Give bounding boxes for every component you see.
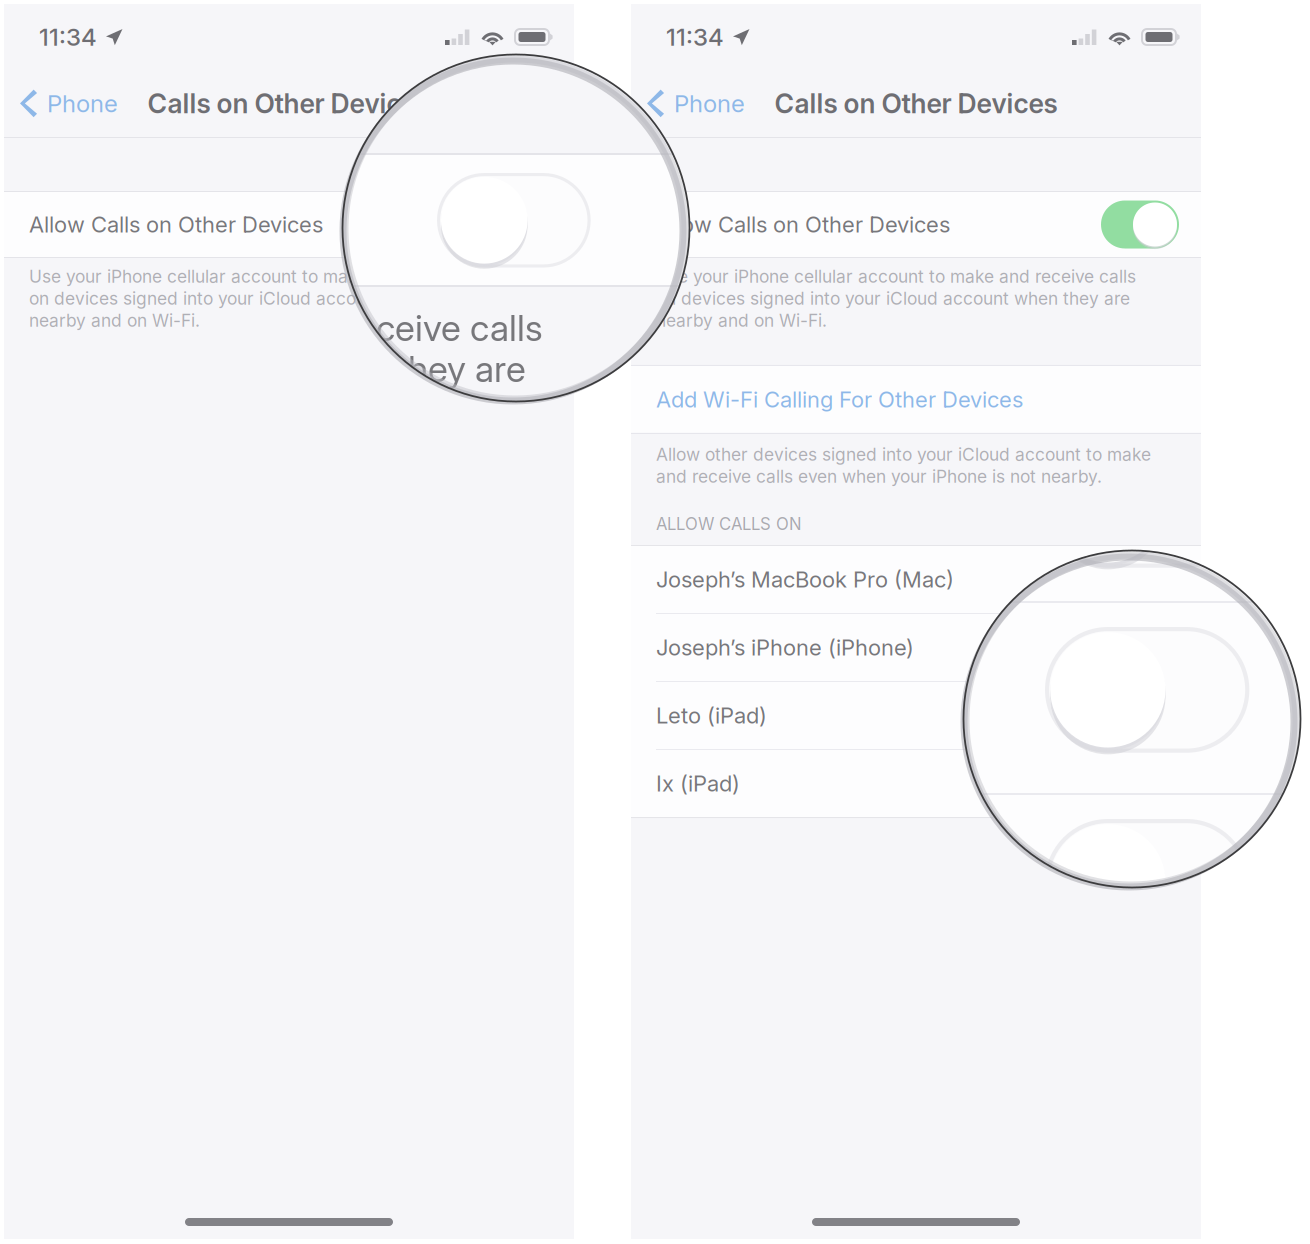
staticText: Phone bbox=[47, 89, 118, 118]
button[interactable]: Add Wi-Fi Calling For Other Devices bbox=[631, 366, 1201, 433]
staticText: Calls on Other Devices bbox=[147, 87, 430, 120]
staticText: Calls on Other Devices bbox=[774, 87, 1057, 120]
button[interactable]: Joseph’s iPhone (iPhone) bbox=[631, 614, 1201, 681]
button[interactable]: Leto (iPad) bbox=[631, 682, 1201, 749]
staticText: Leto (iPad) bbox=[656, 702, 767, 729]
staticText: ALLOW CALLS ON bbox=[656, 514, 802, 534]
staticText: and receive calls even when your iPhone … bbox=[656, 466, 1102, 487]
staticText: ceive calls bbox=[376, 306, 543, 350]
button[interactable]: Joseph’s MacBook Pro (Mac) bbox=[631, 546, 1201, 613]
staticText: Add Wi-Fi Calling For Other Devices bbox=[656, 386, 1023, 413]
staticText: Allow Calls on Other Devices bbox=[656, 211, 950, 238]
staticText: nearby and on Wi-Fi. bbox=[29, 310, 200, 331]
button[interactable]: Allow Calls on Other Devices bbox=[4, 192, 574, 257]
button[interactable]: Phone bbox=[4, 78, 130, 129]
staticText: Joseph’s MacBook Pro (Mac) bbox=[656, 566, 954, 593]
staticText: 11:34 bbox=[666, 22, 724, 51]
staticText: Joseph’s iPhone (iPhone) bbox=[656, 634, 914, 661]
staticText: on devices signed into your iCloud accou… bbox=[29, 288, 503, 309]
staticText: Allow other devices signed into your iCl… bbox=[656, 444, 1151, 465]
staticText: 11:34 bbox=[39, 22, 97, 51]
staticText: Phone bbox=[674, 89, 745, 118]
button[interactable]: Allow Calls on Other Devices bbox=[631, 192, 1201, 257]
staticText: nearby and on Wi-Fi. bbox=[656, 310, 827, 331]
staticText: on devices signed into your iCloud accou… bbox=[656, 288, 1130, 309]
staticText: Ix (iPad) bbox=[656, 770, 740, 797]
button[interactable]: Ix (iPad) bbox=[631, 750, 1201, 817]
button[interactable]: Phone bbox=[631, 78, 757, 129]
staticText: Use your iPhone cellular account to make… bbox=[29, 266, 509, 287]
staticText: Allow Calls on Other Devices bbox=[29, 211, 323, 238]
staticText: hey are bbox=[408, 347, 526, 391]
staticText: Use your iPhone cellular account to make… bbox=[656, 266, 1136, 287]
